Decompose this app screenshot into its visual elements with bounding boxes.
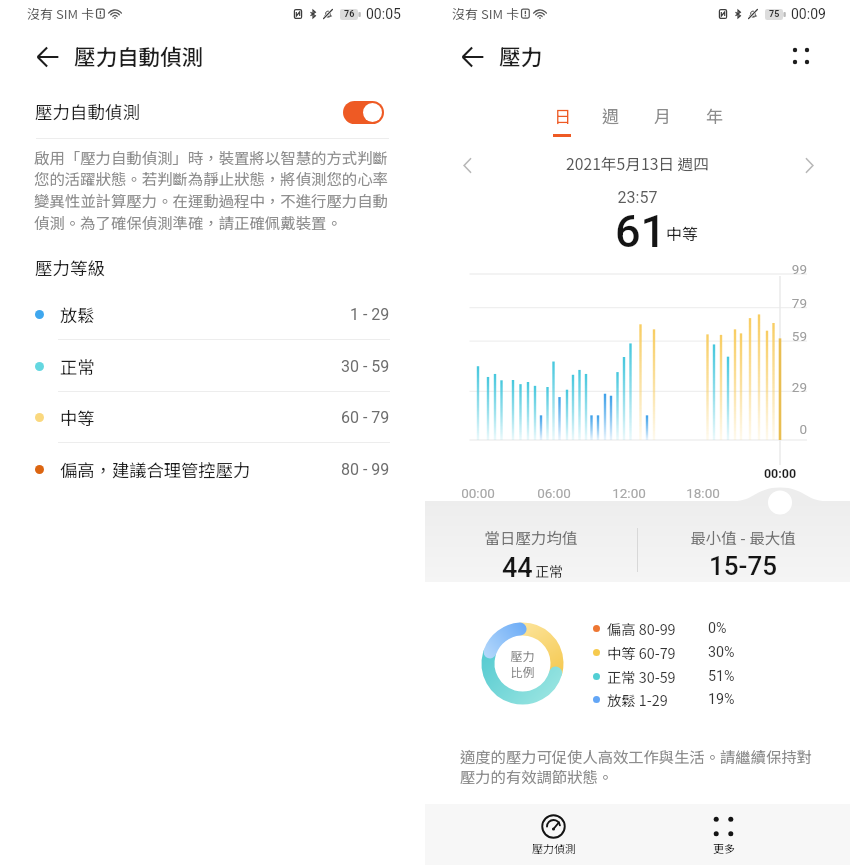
staticText: 週 [602,103,619,128]
staticText: 76 [344,9,355,20]
staticText: 偏高，建議合理管控壓力 [60,457,251,482]
button[interactable]: 偏高 80-99 [593,618,727,639]
staticText: 0% [708,620,727,637]
button[interactable]: 放鬆 [0,288,425,340]
staticText: 79 [777,295,807,311]
staticText: 當日壓力均值 [451,526,611,548]
button[interactable]: 壓力偵測 [508,806,599,864]
staticText: 19% [708,691,735,708]
button[interactable]: 月 [642,103,682,143]
staticText: 00:09 [791,6,826,22]
button[interactable]: 正常 [0,340,425,392]
button[interactable]: Next day [796,152,822,178]
staticText: 2021年5月13日 週四 [425,152,850,175]
staticText: 壓力自動偵測 [35,99,140,124]
button[interactable]: Previous day [454,152,480,178]
staticText: 59 [777,328,807,344]
button[interactable]: 正常 30-59 [593,666,735,687]
staticText: 壓力 [499,40,543,71]
staticText: 00:00 [751,466,809,481]
button[interactable]: 日 [542,103,582,143]
staticText: 00:05 [366,6,401,22]
staticText: 年 [706,103,723,128]
staticText: 1 - 29 [350,305,390,324]
staticText: 偏高 80-99 [607,618,676,639]
button[interactable]: 更多 [678,806,769,864]
staticText: 29 [777,379,807,395]
staticText: 51% [708,668,735,685]
staticText: 30 - 59 [341,357,390,376]
staticText: 日 [554,103,571,128]
button[interactable]: Back [456,40,489,73]
staticText: 最小值 - 最大值 [663,526,823,548]
staticText: 沒有 SIM 卡 [27,4,94,23]
staticText: 60 - 79 [341,408,390,427]
staticText: 75 [769,9,780,20]
staticText: 30% [708,644,735,661]
button[interactable]: More options [784,39,818,73]
staticText: 更多 [713,840,735,856]
staticText: 放鬆 [60,302,95,327]
staticText: 80 - 99 [341,460,390,479]
staticText: 06:00 [530,485,578,501]
staticText: 月 [654,103,671,128]
staticText: 正常 [535,561,563,581]
button[interactable]: 中等 60-79 [593,642,735,663]
staticText: 中等 60-79 [607,642,676,663]
button[interactable]: Back [31,40,64,73]
staticText: 12:00 [605,485,653,501]
staticText: 00:00 [454,485,502,501]
staticText: 23:57 [425,188,850,207]
staticText: 正常 [60,354,95,379]
button[interactable]: Toggle stress auto detect [343,101,384,124]
staticText: 0 [777,421,807,437]
button[interactable]: 偏高，建議合理管控壓力 [0,443,425,495]
staticText: 18:00 [679,485,727,501]
staticText: 61 [615,205,667,258]
staticText: 沒有 SIM 卡 [452,4,519,23]
staticText: 中等 [666,221,699,244]
staticText: 壓力 比例 [510,647,535,680]
staticText: 壓力自動偵測 [74,40,204,71]
staticText: 啟用「壓力自動偵測」時，裝置將以智慧的方式判斷您的活躍狀態。若判斷為靜止狀態，將… [34,146,392,234]
staticText: 中等 [60,405,95,430]
button[interactable]: 放鬆 1-29 [593,689,735,710]
button[interactable]: 中等 [0,391,425,443]
staticText: 15-75 [663,551,823,581]
staticText: 99 [777,261,807,277]
staticText: 壓力偵測 [532,840,576,856]
button[interactable]: 年 [694,103,734,143]
staticText: 放鬆 1-29 [607,689,668,710]
staticText: 壓力等級 [35,255,105,280]
staticText: 44 [502,552,533,584]
staticText: 適度的壓力可促使人高效工作與生活。請繼續保持對壓力的有效調節狀態。 [460,745,820,787]
button[interactable]: 壓力自動偵測 [0,87,425,135]
staticText: 正常 30-59 [607,666,676,687]
button[interactable]: 週 [590,103,630,143]
